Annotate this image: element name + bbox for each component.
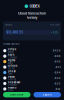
staticText: $420 — [53, 49, 61, 52]
staticText: -$64 — [54, 71, 61, 74]
button[interactable]: Resend — [0, 86, 64, 92]
staticText: Nov 2024 — [50, 23, 59, 26]
staticText: history — [26, 16, 37, 19]
staticText: Sync now — [10, 93, 23, 96]
staticText: Compute — [8, 56, 17, 59]
button[interactable]: Sync now — [3, 92, 30, 97]
button[interactable]: Stripe — [0, 48, 64, 53]
button[interactable]: Figma — [0, 59, 64, 64]
staticText: -$25 — [54, 82, 61, 85]
button[interactable]: Vercel — [0, 75, 64, 81]
staticText: Database — [8, 84, 17, 86]
staticText: Export — [43, 93, 52, 96]
staticText: CODEX — [29, 4, 39, 8]
staticText: Resend — [8, 86, 17, 89]
staticText: Hosting — [8, 78, 16, 81]
staticText: AWS — [8, 53, 15, 56]
button[interactable]: Linear — [0, 70, 64, 75]
staticText: $12,480.55 — [6, 30, 23, 34]
staticText: -$88 — [54, 55, 61, 58]
staticText: -$21 — [55, 66, 61, 69]
staticText: Stripe — [8, 48, 16, 51]
staticText: Cloud transaction — [18, 11, 46, 15]
staticText: Vercel — [8, 75, 15, 78]
staticText: -$45 — [54, 60, 61, 63]
staticText: Figma — [8, 59, 15, 62]
staticText: Email — [8, 89, 14, 92]
staticText: Seats — [8, 62, 13, 64]
staticText: Linear — [8, 70, 16, 73]
staticText: +4.2% — [51, 31, 58, 34]
staticText: -$32 — [54, 76, 61, 80]
staticText: Payout — [8, 51, 14, 53]
button[interactable]: Export — [33, 92, 61, 97]
staticText: Team — [8, 73, 13, 75]
staticText: -$12 — [55, 87, 61, 90]
button[interactable]: GitHub — [0, 64, 64, 70]
button[interactable]: Supabase — [0, 81, 64, 86]
staticText: Recent activity — [3, 43, 19, 46]
staticText: Actions — [8, 67, 15, 70]
staticText: Balance — [5, 23, 12, 26]
staticText: GitHub — [8, 64, 18, 67]
button[interactable]: AWS — [0, 53, 64, 59]
staticText: Supabase — [8, 81, 20, 84]
